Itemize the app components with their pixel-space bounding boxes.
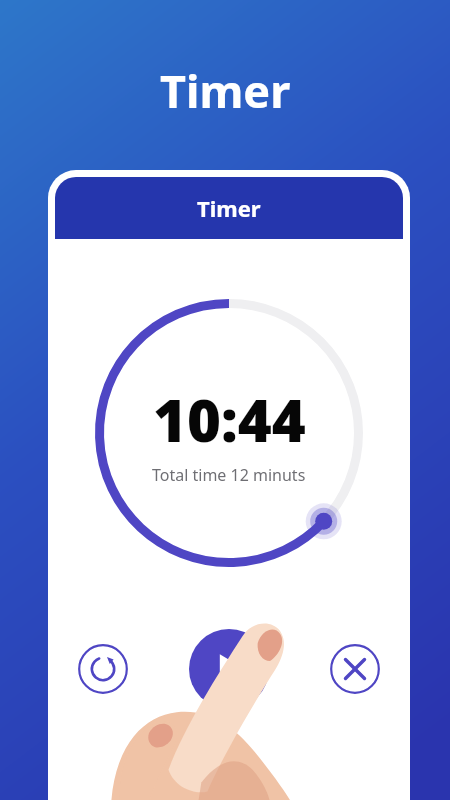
staticText: Timer (160, 60, 291, 121)
button[interactable]: Cancel (317, 631, 393, 707)
button[interactable]: Timer (55, 177, 403, 239)
button[interactable]: Start (187, 627, 271, 711)
staticText: Total time 12 minuts (152, 464, 306, 486)
button[interactable]: Restart (65, 631, 141, 707)
staticText: Timer (197, 193, 261, 223)
staticText: 10:44 (153, 380, 306, 459)
